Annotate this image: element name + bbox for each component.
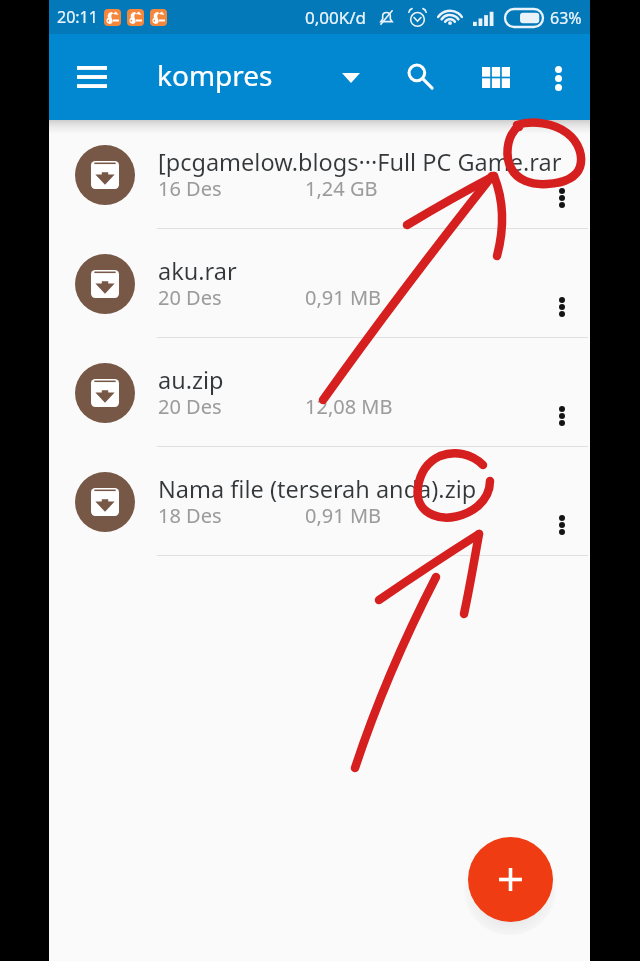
staticText: 1,24 GB xyxy=(305,175,378,202)
button[interactable]: Nama file (terserah anda).zip xyxy=(49,447,590,556)
staticText: [pcgamelow.blogs···Full PC Game.rar xyxy=(158,146,562,178)
staticText: 0,91 MB xyxy=(305,284,382,311)
staticText: 20 Des xyxy=(158,284,222,311)
button[interactable]: aku.rar xyxy=(49,229,590,338)
staticText: 20 Des xyxy=(158,393,222,420)
staticText: 63% xyxy=(550,7,582,29)
button[interactable]: Search xyxy=(395,51,445,101)
button[interactable]: au.zip xyxy=(49,338,590,447)
button[interactable]: Open navigation menu xyxy=(66,51,118,103)
button[interactable]: More options xyxy=(534,54,582,102)
button[interactable]: Add xyxy=(468,837,553,922)
button[interactable]: Grid view xyxy=(472,53,520,101)
staticText: kompres xyxy=(157,56,273,94)
staticText: au.zip xyxy=(158,364,224,396)
button[interactable]: Item options xyxy=(538,283,586,331)
button[interactable]: Change folder xyxy=(328,55,374,101)
staticText: 18 Des xyxy=(158,502,222,529)
button[interactable]: [pcgamelow.blogs···Full PC Game.rar xyxy=(49,120,590,229)
button[interactable]: Item options xyxy=(538,174,586,222)
staticText: 16 Des xyxy=(158,175,222,202)
staticText: 0,91 MB xyxy=(305,502,382,529)
staticText: 0,00K/d xyxy=(305,6,367,29)
staticText: aku.rar xyxy=(158,255,237,287)
button[interactable]: Item options xyxy=(538,501,586,549)
staticText: 12,08 MB xyxy=(305,393,393,420)
button[interactable]: Item options xyxy=(538,392,586,440)
staticText: Nama file (terserah anda).zip xyxy=(158,473,477,505)
staticText: 20:11 xyxy=(57,6,98,28)
